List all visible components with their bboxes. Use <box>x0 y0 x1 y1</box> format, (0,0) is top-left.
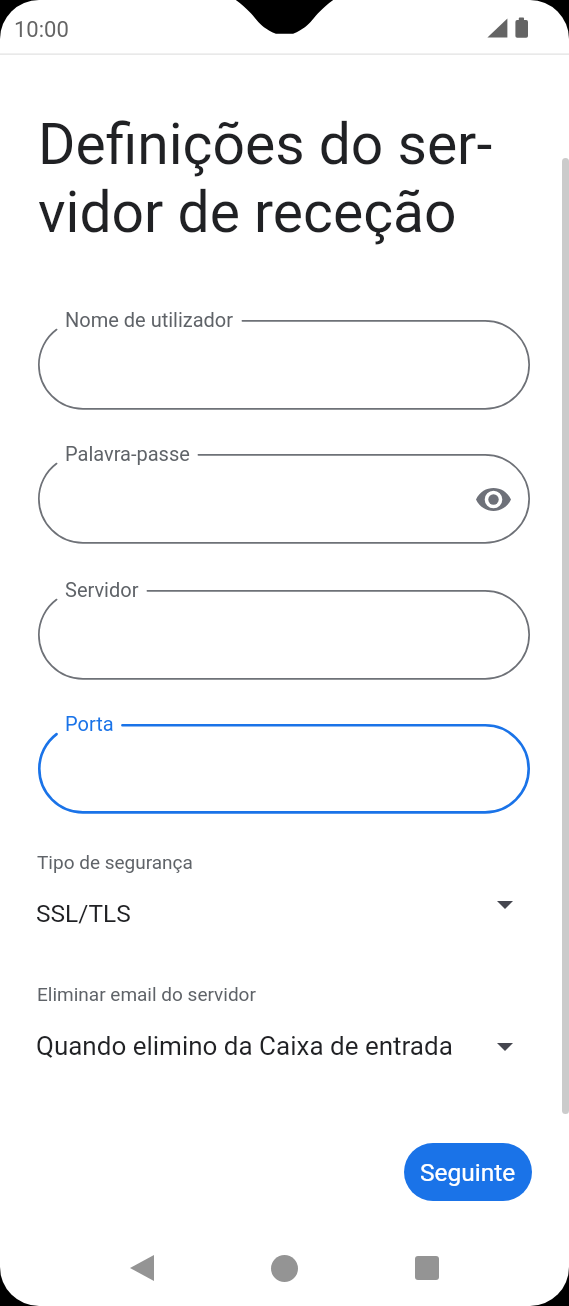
staticText: Eliminar email do servidor <box>37 983 256 1005</box>
staticText: Palavra-passe <box>65 442 190 465</box>
button[interactable]: Nome de utilizador <box>38 300 530 430</box>
button[interactable]: Home <box>242 1226 326 1306</box>
button[interactable]: Back <box>100 1226 184 1306</box>
button[interactable]: Recent apps <box>385 1226 469 1306</box>
staticText: Seguinte <box>420 1158 516 1187</box>
button[interactable]: Tipo de segurança <box>0 845 569 931</box>
button[interactable]: Mostrar palavra-passe <box>469 475 517 523</box>
staticText: SSL/TLS <box>36 899 131 928</box>
button[interactable]: Servidor <box>38 570 530 700</box>
other: Signal and battery status <box>486 16 532 40</box>
staticText: Tipo de segurança <box>37 851 193 873</box>
staticText: Quando elimino da Caixa de entrada <box>36 1031 453 1061</box>
button[interactable]: Porta <box>38 704 530 834</box>
button[interactable]: Eliminar email do servidor <box>0 977 569 1063</box>
staticText: Porta <box>65 712 114 735</box>
staticText: 10:00 <box>14 17 69 43</box>
button[interactable]: Palavra-passe <box>38 434 530 564</box>
button[interactable]: Seguinte <box>404 1143 532 1201</box>
staticText: Servidor <box>65 578 139 601</box>
staticText: Nome de utilizador <box>65 308 234 331</box>
staticText: Definições do ser- vidor de receção <box>38 111 493 246</box>
